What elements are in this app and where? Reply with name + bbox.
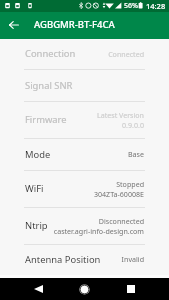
button[interactable]: Firmware	[0, 102, 169, 139]
staticText: Antenna Position	[25, 253, 101, 266]
staticText: Latest Version	[96, 110, 144, 120]
button[interactable]: Ntrip	[0, 208, 169, 245]
staticText: Invalid	[121, 254, 144, 264]
button[interactable]: WiFi	[0, 171, 169, 208]
button[interactable]: Connection	[0, 39, 169, 70]
staticText: caster.agri-info-design.com	[53, 226, 144, 236]
button[interactable]: Recent apps	[120, 278, 142, 300]
button[interactable]: Navigate up	[2, 13, 26, 37]
staticText: 0.9.0.0	[122, 120, 144, 130]
staticText: Signal SNR	[25, 79, 73, 92]
staticText: Firmware	[25, 113, 67, 126]
staticText: Ntrip	[25, 219, 48, 232]
staticText: Connection	[25, 47, 76, 60]
staticText: AGBGMR-BT-F4CA	[34, 18, 115, 31]
button[interactable]: Home	[73, 278, 95, 300]
staticText: 14:28	[146, 1, 166, 11]
button[interactable]: Antenna Position	[0, 245, 169, 275]
button[interactable]: Mode	[0, 139, 169, 171]
button[interactable]: Back	[27, 278, 49, 300]
staticText: Connected	[108, 49, 144, 59]
staticText: Mode	[25, 148, 51, 161]
staticText: WiFi	[25, 182, 44, 195]
staticText: Base	[128, 149, 144, 159]
staticText: 304ZTa-60008E	[93, 189, 144, 199]
staticText: Disconnected	[98, 216, 144, 226]
staticText: Stopped	[116, 179, 144, 189]
button[interactable]: Signal SNR	[0, 70, 169, 102]
staticText: 56%	[124, 1, 138, 11]
